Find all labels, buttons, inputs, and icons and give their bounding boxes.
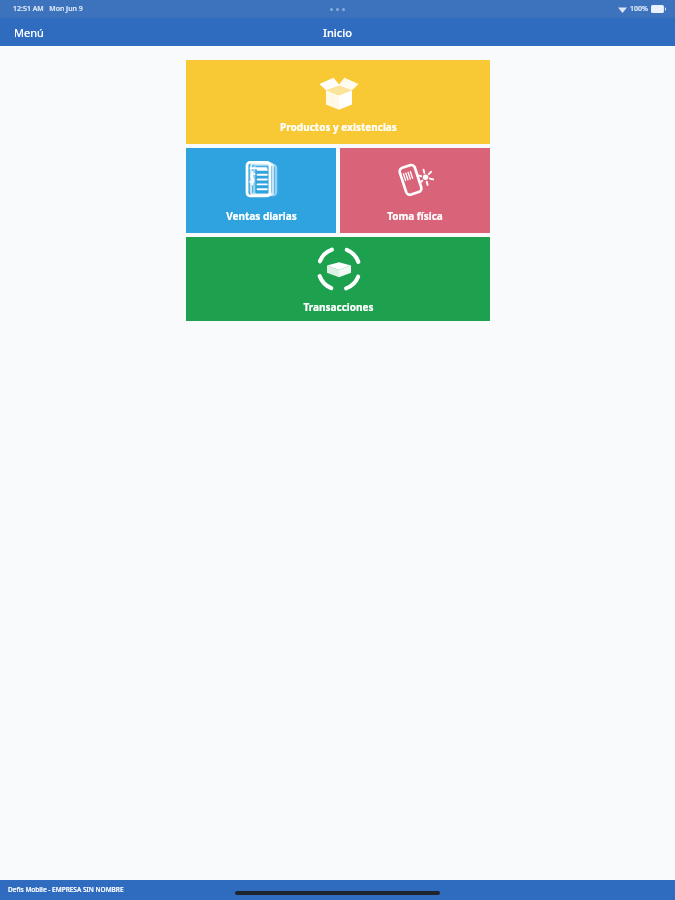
- staticText: Menú: [14, 25, 44, 40]
- staticText: Toma física: [387, 209, 443, 223]
- staticText: Productos y existencias: [280, 120, 397, 134]
- staticText: 100%: [630, 4, 648, 14]
- staticText: Inicio: [323, 25, 352, 40]
- staticText: Ventas diarias: [226, 209, 297, 223]
- staticText: Defis Mobile - EMPRESA SIN NOMBRE: [8, 885, 124, 894]
- staticText: Transacciones: [303, 300, 374, 314]
- button[interactable]: Ventas diarias: [186, 148, 336, 233]
- button[interactable]: Menú: [0, 18, 58, 46]
- button[interactable]: Transacciones: [186, 237, 490, 321]
- staticText: 12:51 AM Mon Jun 9: [13, 4, 83, 14]
- button[interactable]: Productos y existencias: [186, 60, 490, 144]
- button[interactable]: Toma física: [340, 148, 490, 233]
